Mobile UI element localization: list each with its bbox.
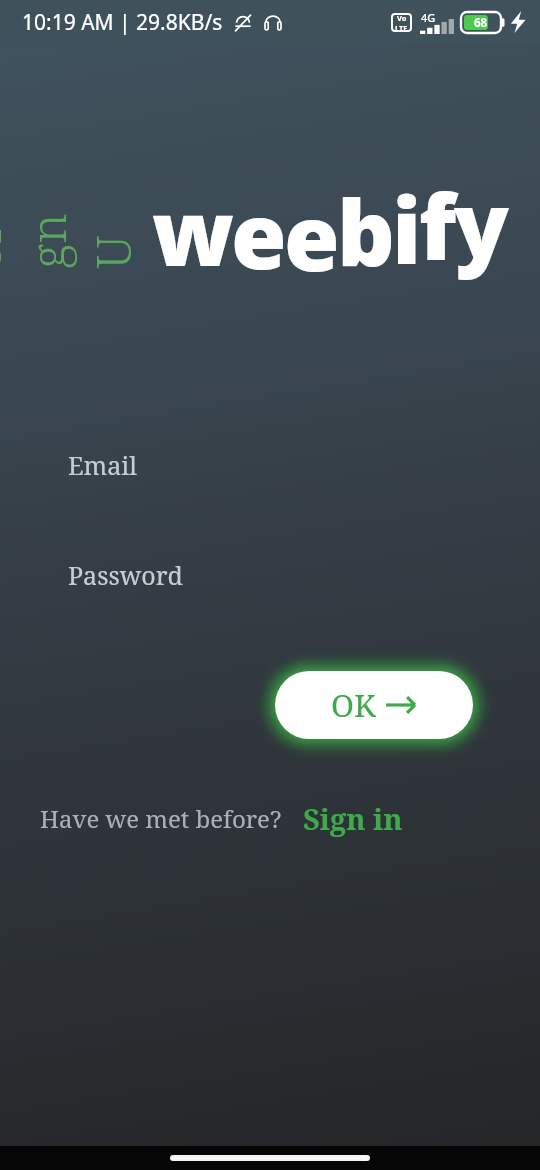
- staticText: b: [337, 170, 392, 293]
- staticText: 4G: [421, 10, 436, 25]
- staticText: w: [152, 170, 231, 293]
- staticText: Have we met before?: [40, 802, 282, 835]
- staticText: OK: [331, 684, 376, 726]
- staticText: e: [284, 175, 337, 298]
- staticText: y: [454, 162, 506, 285]
- button[interactable]: OK: [275, 671, 473, 739]
- other: Home: [170, 1155, 370, 1161]
- staticText: f: [419, 164, 454, 287]
- staticText: Sign Up: [0, 207, 140, 269]
- button[interactable]: Email: [68, 438, 472, 492]
- staticText: LTE: [395, 23, 408, 33]
- staticText: Vo: [397, 13, 407, 23]
- staticText: Email: [68, 448, 138, 482]
- staticText: Password: [68, 558, 183, 592]
- staticText: 68: [474, 15, 488, 31]
- staticText: e: [231, 173, 284, 296]
- staticText: 10:19 AM | 29.8KB/s: [22, 8, 223, 37]
- staticText: Sign in: [303, 799, 403, 838]
- button[interactable]: Password: [68, 548, 472, 602]
- staticText: i: [392, 168, 419, 291]
- button[interactable]: Sign in: [300, 796, 406, 841]
